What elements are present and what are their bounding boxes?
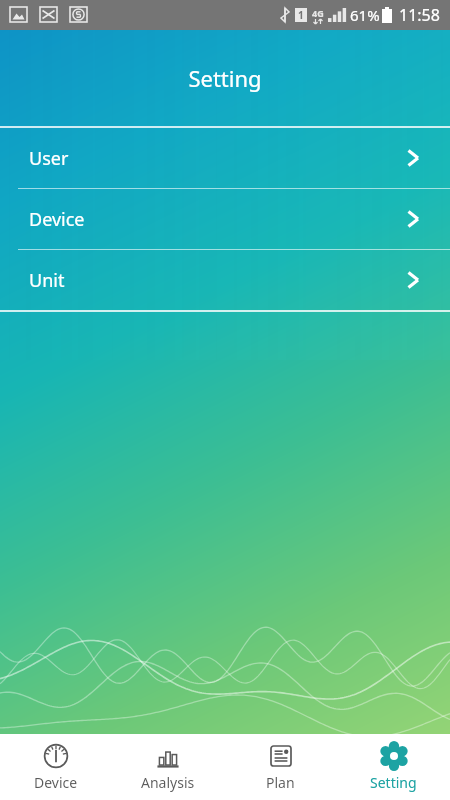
staticText: 4G bbox=[312, 7, 324, 19]
button[interactable]: Analysis bbox=[112, 734, 224, 800]
staticText: Unit bbox=[29, 268, 65, 293]
button[interactable]: Setting bbox=[337, 734, 450, 800]
button[interactable]: Plan bbox=[224, 734, 337, 800]
staticText: Setting bbox=[370, 773, 417, 792]
staticText: 1 bbox=[298, 8, 304, 22]
staticText: User bbox=[29, 146, 69, 171]
staticText: Analysis bbox=[141, 773, 195, 792]
button[interactable]: Unit bbox=[0, 250, 450, 310]
staticText: 11:58 bbox=[399, 4, 440, 26]
button[interactable]: User bbox=[0, 128, 450, 188]
staticText: Plan bbox=[266, 773, 295, 792]
button[interactable]: Device bbox=[0, 734, 112, 800]
staticText: 61% bbox=[350, 5, 380, 25]
staticText: Setting bbox=[188, 63, 262, 93]
staticText: Device bbox=[29, 207, 85, 232]
button[interactable]: Device bbox=[0, 189, 450, 249]
staticText: Device bbox=[34, 773, 78, 792]
